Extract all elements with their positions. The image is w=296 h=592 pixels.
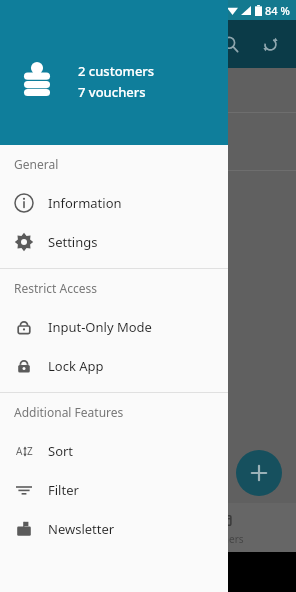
staticText: Additional Features <box>14 404 124 420</box>
staticText: Z <box>27 444 33 458</box>
staticText: Sort <box>48 442 74 460</box>
button[interactable]: Newsletter <box>0 509 228 548</box>
staticText: Newsletter <box>48 520 115 538</box>
staticText: General <box>14 156 59 172</box>
button[interactable]: Refresh <box>250 24 290 64</box>
staticText: 7 vouchers <box>78 83 146 101</box>
button[interactable]: Information <box>0 183 228 222</box>
staticText: Information <box>48 194 122 212</box>
button[interactable]: Lock App <box>0 346 228 385</box>
button[interactable]: Search <box>210 24 250 64</box>
staticText: Restrict Access <box>14 280 98 296</box>
button[interactable]: Settings <box>0 222 228 261</box>
button[interactable]: Add <box>236 450 282 496</box>
staticText: Settings <box>48 233 98 251</box>
staticText: A <box>16 444 23 458</box>
button[interactable]: A <box>0 431 228 470</box>
staticText: 84 % <box>265 3 290 18</box>
staticText: Vouchers <box>200 532 244 546</box>
staticText: Lock App <box>48 357 104 375</box>
staticText: Filter <box>48 481 79 499</box>
staticText: Input-Only Mode <box>48 318 152 336</box>
staticText: 2 customers <box>78 62 155 80</box>
button[interactable]: Input-Only Mode <box>0 307 228 346</box>
button[interactable]: Filter <box>0 470 228 509</box>
button[interactable]: Vouchers <box>148 503 296 552</box>
button[interactable]: Recent apps <box>178 552 237 592</box>
